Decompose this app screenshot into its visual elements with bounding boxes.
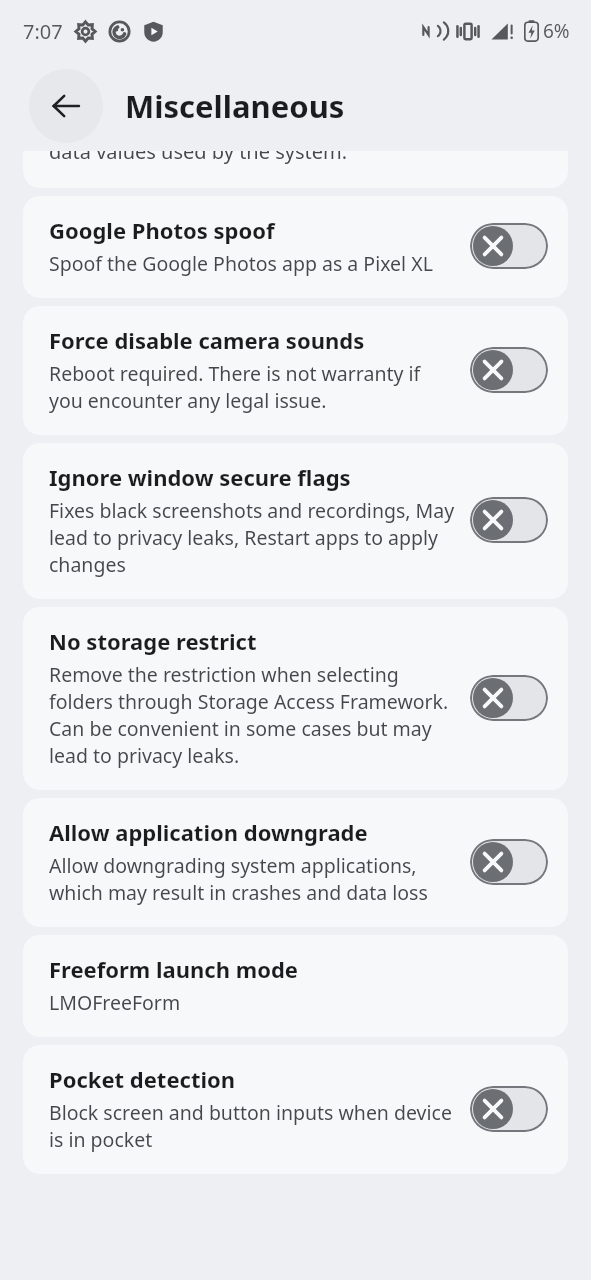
button[interactable]: Toggle off (470, 839, 548, 885)
staticText: Miscellaneous (125, 85, 345, 127)
button[interactable]: Toggle off (470, 497, 548, 543)
button[interactable]: Force disable camera sounds (23, 306, 568, 435)
button[interactable]: Ignore window secure flags (23, 443, 568, 599)
button[interactable]: Toggle off (470, 223, 548, 269)
staticText: Spoof the Google Photos app as a Pixel X… (49, 250, 433, 277)
staticText: LMOFreeForm (49, 989, 181, 1016)
staticText: Google Photos spoof (49, 215, 275, 245)
staticText: Force disable camera sounds (49, 325, 365, 355)
staticText: Fixes black screenshots and recordings, … (49, 497, 456, 578)
button[interactable]: Toggle off (470, 675, 548, 721)
staticText: 6% (543, 18, 570, 44)
button[interactable]: No storage restrict (23, 607, 568, 790)
staticText: data values used by the system. (49, 151, 348, 165)
button[interactable]: Freeform launch mode (23, 935, 568, 1037)
button[interactable]: Back (29, 69, 103, 143)
button[interactable]: Allow application downgrade (23, 798, 568, 927)
staticText: Allow downgrading system applications, w… (49, 852, 456, 906)
staticText: Allow application downgrade (49, 817, 368, 847)
staticText: 7:07 (23, 18, 63, 45)
button[interactable]: Toggle off (470, 1086, 548, 1132)
button[interactable]: data values used by the system. (23, 151, 568, 188)
staticText: Remove the restriction when selecting fo… (49, 661, 456, 769)
button[interactable]: Google Photos spoof (23, 196, 568, 298)
staticText: No storage restrict (49, 626, 257, 656)
staticText: Block screen and button inputs when devi… (49, 1099, 456, 1153)
staticText: Ignore window secure flags (49, 462, 351, 492)
staticText: Reboot required. There is not warranty i… (49, 360, 456, 414)
button[interactable]: Toggle off (470, 347, 548, 393)
button[interactable]: Pocket detection (23, 1045, 568, 1174)
staticText: Freeform launch mode (49, 954, 298, 984)
staticText: Pocket detection (49, 1064, 236, 1094)
